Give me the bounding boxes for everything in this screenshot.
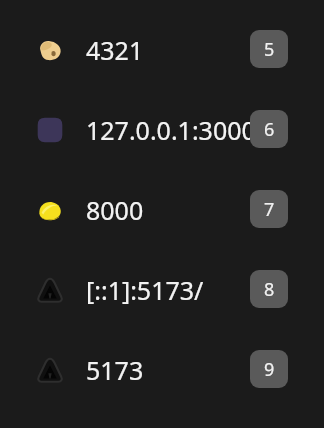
button[interactable]: 9 <box>250 350 288 388</box>
staticText: 127.0.0.1:3000 <box>86 113 250 147</box>
button[interactable]: 7 <box>250 190 288 228</box>
staticText: 9 <box>264 357 275 382</box>
other: Lemon app icon <box>36 196 64 224</box>
staticText: 4321 <box>86 33 144 67</box>
staticText: 5173 <box>86 353 144 387</box>
other: Astro app icon <box>36 356 64 384</box>
staticText: 7 <box>264 197 275 222</box>
button[interactable]: 5 <box>250 30 288 68</box>
staticText: 5 <box>264 37 275 62</box>
button[interactable]: 6 <box>250 110 288 148</box>
staticText: 8 <box>264 277 275 302</box>
staticText: [::1]:5173/ <box>86 273 204 307</box>
button[interactable]: Bun app icon <box>0 10 324 90</box>
other: App icon <box>36 116 64 144</box>
button[interactable]: Lemon app icon <box>0 170 324 250</box>
other: Bun app icon <box>36 36 64 64</box>
button[interactable]: Astro app icon <box>0 330 324 410</box>
staticText: 6 <box>264 117 275 142</box>
other: Astro app icon <box>36 276 64 304</box>
button[interactable]: Astro app icon <box>0 250 324 330</box>
staticText: 8000 <box>86 193 144 227</box>
button[interactable]: 8 <box>250 270 288 308</box>
button[interactable]: App icon <box>0 90 324 170</box>
